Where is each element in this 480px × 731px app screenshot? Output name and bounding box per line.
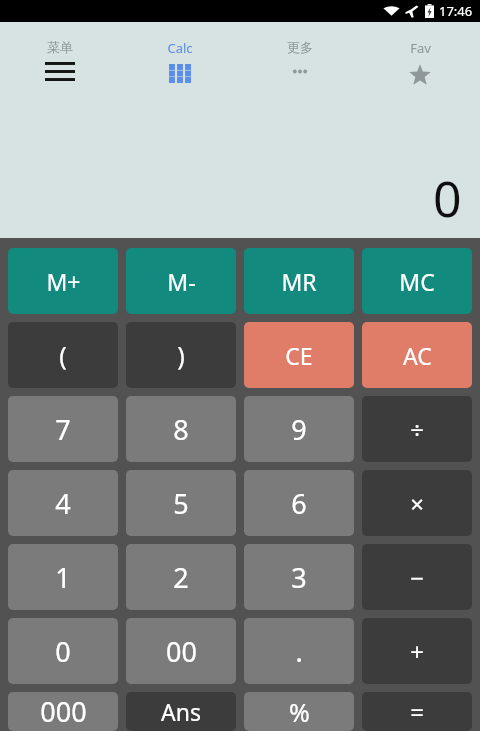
button[interactable]: 7 [8,396,118,462]
button[interactable]: Favorites [360,22,480,112]
staticText: ÷ [410,413,424,446]
button[interactable]: AC [362,322,472,388]
staticText: = [410,695,424,728]
staticText: MR [281,266,317,297]
button[interactable]: % [244,692,354,731]
staticText: ( [59,338,67,372]
button[interactable]: MC [362,248,472,314]
staticText: 6 [291,485,307,522]
button[interactable]: M+ [8,248,118,314]
staticText: ) [177,338,185,372]
button[interactable]: 4 [8,470,118,536]
staticText: + [410,635,424,668]
button[interactable]: = [362,692,472,731]
button[interactable]: 8 [126,396,236,462]
staticText: 00 [166,633,197,670]
button[interactable]: 6 [244,470,354,536]
staticText: 7 [55,411,71,448]
staticText: AC [403,340,432,371]
staticText: 3 [291,559,307,596]
staticText: M- [167,266,196,297]
button[interactable]: ) [126,322,236,388]
staticText: 2 [173,559,189,596]
staticText: 菜单 [47,39,73,55]
button[interactable]: . [244,618,354,684]
staticText: 4 [55,485,71,522]
staticText: 8 [173,411,189,448]
button[interactable]: 000 [8,692,118,731]
staticText: M+ [46,266,81,297]
staticText: 9 [291,411,307,448]
staticText: 17:46 [439,2,473,20]
staticText: 0 [55,633,71,670]
button[interactable]: ÷ [362,396,472,462]
button[interactable]: 00 [126,618,236,684]
button[interactable]: MR [244,248,354,314]
staticText: Fav [410,39,431,57]
button[interactable]: 1 [8,544,118,610]
staticText: . [295,633,303,670]
staticText: Calc [167,39,193,57]
button[interactable]: + [362,618,472,684]
staticText: % [289,695,310,729]
button[interactable]: 3 [244,544,354,610]
staticText: MC [399,266,435,297]
staticText: CE [285,340,313,371]
button[interactable]: − [362,544,472,610]
button[interactable]: 5 [126,470,236,536]
button[interactable]: More [240,22,360,112]
button[interactable]: CE [244,322,354,388]
button[interactable]: ( [8,322,118,388]
button[interactable]: 9 [244,396,354,462]
staticText: 0 [433,164,462,232]
staticText: 5 [173,485,189,522]
staticText: 更多 [287,39,313,55]
button[interactable]: 0 [8,618,118,684]
staticText: 000 [40,693,87,730]
button[interactable]: × [362,470,472,536]
button[interactable]: Calculator [120,22,240,112]
staticText: − [410,561,424,594]
staticText: 1 [55,559,71,596]
button[interactable]: Ans [126,692,236,731]
staticText: × [410,487,424,520]
button[interactable]: M- [126,248,236,314]
staticText: Ans [161,696,201,727]
button[interactable]: 2 [126,544,236,610]
button[interactable]: Menu [0,22,120,112]
